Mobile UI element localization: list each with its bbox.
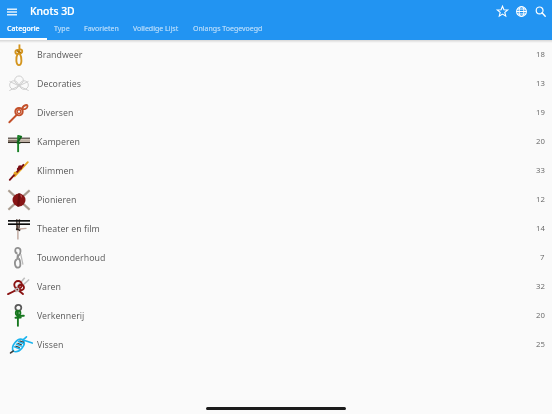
staticText: 19 xyxy=(536,107,545,118)
button[interactable]: Volledige Lijst xyxy=(126,23,186,40)
staticText: Theater en film xyxy=(37,223,100,235)
staticText: Categorie xyxy=(7,24,40,34)
button[interactable]: Navigation menu xyxy=(0,0,24,23)
staticText: Type xyxy=(54,24,70,34)
staticText: 14 xyxy=(536,223,545,234)
staticText: Volledige Lijst xyxy=(133,24,179,34)
staticText: Vissen xyxy=(37,339,64,351)
staticText: Pionieren xyxy=(37,194,77,206)
staticText: 32 xyxy=(536,281,545,292)
button[interactable]: Pionieren xyxy=(0,185,552,214)
button[interactable]: Brandweer xyxy=(0,40,552,69)
staticText: 18 xyxy=(536,49,545,60)
button[interactable]: Klimmen xyxy=(0,156,552,185)
button[interactable]: Decoraties xyxy=(0,69,552,98)
button[interactable]: Categorie xyxy=(0,23,47,40)
staticText: Verkennerij xyxy=(37,310,85,322)
staticText: Decoraties xyxy=(37,78,81,90)
button[interactable]: Varen xyxy=(0,272,552,301)
staticText: Onlangs Toegevoegd xyxy=(193,24,263,34)
staticText: Varen xyxy=(37,281,61,293)
staticText: Favorieten xyxy=(84,24,119,34)
staticText: Diversen xyxy=(37,107,74,119)
staticText: Klimmen xyxy=(37,165,74,177)
staticText: 7 xyxy=(540,252,545,263)
staticText: Touwonderhoud xyxy=(37,252,106,264)
staticText: 20 xyxy=(536,136,545,147)
staticText: Kamperen xyxy=(37,136,80,148)
button[interactable]: Onlangs Toegevoegd xyxy=(186,23,270,40)
button[interactable]: Vissen xyxy=(0,330,552,359)
staticText: 13 xyxy=(536,78,545,89)
button[interactable]: Language xyxy=(512,0,531,23)
staticText: Brandweer xyxy=(37,49,83,61)
button[interactable]: Touwonderhoud xyxy=(0,243,552,272)
button[interactable]: Theater en film xyxy=(0,214,552,243)
button[interactable]: Verkennerij xyxy=(0,301,552,330)
button[interactable]: Diversen xyxy=(0,98,552,127)
staticText: 25 xyxy=(536,339,545,350)
button[interactable]: Type xyxy=(47,23,77,40)
button[interactable]: Search xyxy=(531,0,550,23)
button[interactable]: Favorites xyxy=(493,0,512,23)
staticText: 20 xyxy=(536,310,545,321)
staticText: 12 xyxy=(536,194,545,205)
button[interactable]: Favorieten xyxy=(77,23,126,40)
button[interactable]: Kamperen xyxy=(0,127,552,156)
staticText: 33 xyxy=(536,165,545,176)
staticText: Knots 3D xyxy=(30,4,75,18)
